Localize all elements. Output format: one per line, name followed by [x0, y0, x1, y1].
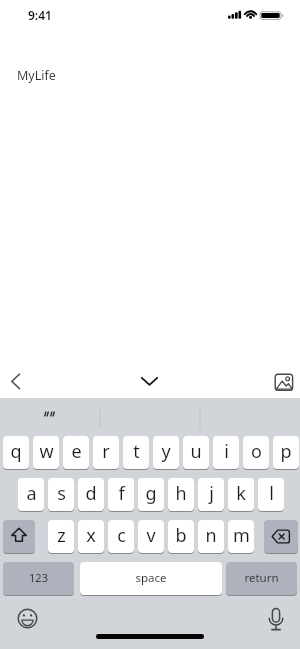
button[interactable]: v: [138, 520, 164, 553]
staticText: v: [146, 523, 156, 548]
staticText: q: [10, 439, 22, 464]
button[interactable]: [271, 370, 297, 394]
staticText: g: [145, 481, 157, 506]
staticText: u: [190, 439, 202, 464]
staticText: e: [71, 439, 82, 464]
button[interactable]: g: [138, 478, 164, 511]
staticText: i: [224, 439, 229, 464]
button[interactable]: h: [168, 478, 194, 511]
staticText: b: [175, 523, 187, 548]
button[interactable]: s: [48, 478, 74, 511]
button[interactable]: l: [258, 478, 284, 511]
button[interactable]: z: [48, 520, 74, 553]
button[interactable]: p: [273, 436, 299, 469]
staticText: p: [280, 439, 292, 464]
button[interactable]: [137, 370, 162, 392]
button[interactable]: [263, 603, 289, 635]
staticText: a: [26, 481, 37, 506]
staticText: return: [244, 570, 279, 586]
button[interactable]: t: [123, 436, 149, 469]
staticText: z: [57, 523, 66, 548]
staticText: d: [85, 481, 97, 506]
button[interactable]: c: [108, 520, 134, 553]
staticText: n: [205, 523, 217, 548]
button[interactable]: j: [198, 478, 224, 511]
button[interactable]: return: [226, 562, 297, 595]
staticText: y: [161, 439, 171, 464]
button[interactable]: y: [153, 436, 179, 469]
button[interactable]: m: [228, 520, 254, 553]
staticText: o: [251, 439, 262, 464]
staticText: w: [39, 439, 54, 464]
button[interactable]: x: [78, 520, 104, 553]
staticText: x: [86, 523, 96, 548]
button[interactable]: [0, 399, 99, 431]
button[interactable]: space: [80, 562, 222, 595]
button[interactable]: r: [93, 436, 119, 469]
button[interactable]: a: [18, 478, 44, 511]
staticText: space: [135, 570, 167, 586]
staticText: MyLife: [17, 67, 56, 84]
button[interactable]: [14, 605, 41, 632]
staticText: 123: [29, 570, 48, 585]
staticText: h: [175, 481, 187, 506]
button[interactable]: i: [213, 436, 239, 469]
staticText: m: [233, 523, 250, 548]
button[interactable]: [4, 368, 28, 392]
button[interactable]: u: [183, 436, 209, 469]
button[interactable]: [3, 520, 35, 553]
button[interactable]: d: [78, 478, 104, 511]
staticText: r: [102, 439, 110, 464]
button[interactable]: [264, 520, 298, 553]
button[interactable]: o: [243, 436, 269, 469]
button[interactable]: 123: [3, 562, 74, 595]
button[interactable]: f: [108, 478, 134, 511]
staticText: j: [209, 481, 214, 506]
staticText: c: [117, 523, 126, 548]
button[interactable]: q: [3, 436, 29, 469]
button[interactable]: e: [63, 436, 89, 469]
staticText: t: [133, 439, 140, 464]
button[interactable]: k: [228, 478, 254, 511]
staticText: s: [57, 481, 66, 506]
staticText: l: [269, 481, 274, 506]
button[interactable]: w: [33, 436, 59, 469]
staticText: 9:41: [28, 7, 52, 23]
button[interactable]: n: [198, 520, 224, 553]
staticText: k: [236, 481, 246, 506]
staticText: f: [118, 481, 125, 506]
button[interactable]: b: [168, 520, 194, 553]
